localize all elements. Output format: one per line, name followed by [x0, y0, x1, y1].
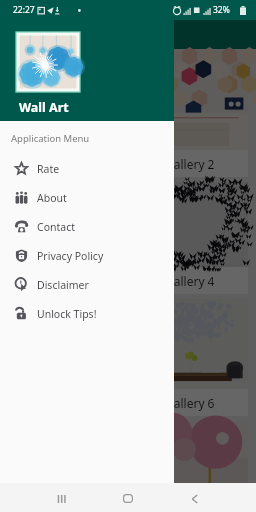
button[interactable]: Unlock Tips!: [0, 299, 174, 328]
staticText: Gallery 3: [41, 273, 91, 289]
button[interactable]: Gallery 3: [8, 182, 124, 294]
staticText: Wall Decoration: [46, 26, 143, 44]
button[interactable]: Home: [105, 483, 150, 512]
staticText: Contact: [37, 220, 75, 234]
button[interactable]: Rate: [0, 154, 174, 183]
staticText: Disclaimer: [37, 278, 89, 292]
button[interactable]: Privacy Policy: [0, 241, 174, 270]
button[interactable]: Gallery 2: [132, 49, 248, 177]
staticText: Gallery 4: [165, 273, 215, 289]
button[interactable]: Recent apps: [39, 483, 84, 512]
button[interactable]: App artwork: [16, 32, 80, 92]
button[interactable]: Gallery 5: [8, 299, 124, 416]
staticText: Rate: [37, 162, 60, 176]
staticText: About: [37, 191, 67, 205]
button[interactable]: Gallery 8: [132, 421, 248, 483]
staticText: Gallery 6: [165, 395, 215, 411]
staticText: Wall Art: [19, 99, 69, 116]
staticText: Application Menu: [11, 132, 90, 145]
button[interactable]: Gallery 4: [132, 182, 248, 294]
staticText: Gallery 2: [165, 156, 215, 172]
button[interactable]: Gallery 6: [132, 299, 248, 416]
staticText: Gallery 1: [41, 156, 91, 172]
staticText: Privacy Policy: [37, 249, 104, 263]
button[interactable]: Contact: [0, 212, 174, 241]
staticText: 22:27: [13, 4, 35, 16]
button[interactable]: About: [0, 183, 174, 212]
staticText: 32%: [213, 4, 230, 16]
button[interactable]: Gallery 1: [8, 49, 124, 177]
button[interactable]: Disclaimer: [0, 270, 174, 299]
button[interactable]: Back: [172, 483, 217, 512]
staticText: Unlock Tips!: [37, 307, 97, 321]
